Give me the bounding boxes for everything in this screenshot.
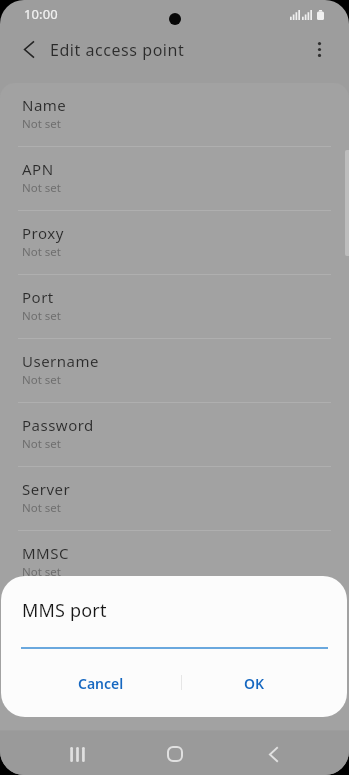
staticText: Not set (22, 564, 61, 580)
staticText: Edit access point (50, 39, 185, 61)
staticText: Name (22, 95, 67, 115)
staticText: Password (22, 415, 94, 435)
button[interactable]: Username (0, 339, 349, 403)
button[interactable]: Cancel (21, 664, 181, 702)
button[interactable]: Home (151, 732, 199, 775)
staticText: OK (244, 674, 265, 693)
button[interactable]: Port (0, 275, 349, 339)
staticText: Username (22, 351, 99, 371)
button[interactable]: MMSC (0, 531, 349, 595)
button[interactable]: Navigate up (12, 33, 45, 66)
staticText: MMS port (22, 598, 107, 623)
button[interactable]: Back (249, 732, 297, 775)
button[interactable]: Name (0, 83, 349, 147)
staticText: Not set (22, 372, 61, 388)
button[interactable]: MMS proxy (0, 595, 349, 659)
staticText: Not set (22, 308, 61, 324)
button[interactable]: MMS port (0, 659, 349, 723)
button[interactable]: OK (181, 664, 328, 702)
button[interactable]: APN (0, 147, 349, 211)
staticText: Not set (22, 436, 61, 452)
staticText: 10:00 (24, 5, 58, 23)
staticText: Cancel (78, 674, 124, 693)
staticText: Not set (22, 244, 61, 260)
staticText: MMSC (22, 543, 69, 563)
button[interactable]: Password (0, 403, 349, 467)
button[interactable]: More options (303, 33, 336, 66)
staticText: Port (22, 287, 54, 307)
staticText: Server (22, 479, 71, 499)
staticText: MMS port (22, 671, 96, 691)
staticText: Not set (22, 500, 61, 516)
staticText: MMS proxy (22, 607, 106, 627)
staticText: Not set (22, 116, 61, 132)
staticText: APN (22, 159, 54, 179)
button[interactable]: Recent apps (53, 732, 101, 775)
staticText: Proxy (22, 223, 64, 243)
button[interactable]: Server (0, 467, 349, 531)
button[interactable]: Proxy (0, 211, 349, 275)
staticText: Not set (22, 180, 61, 196)
